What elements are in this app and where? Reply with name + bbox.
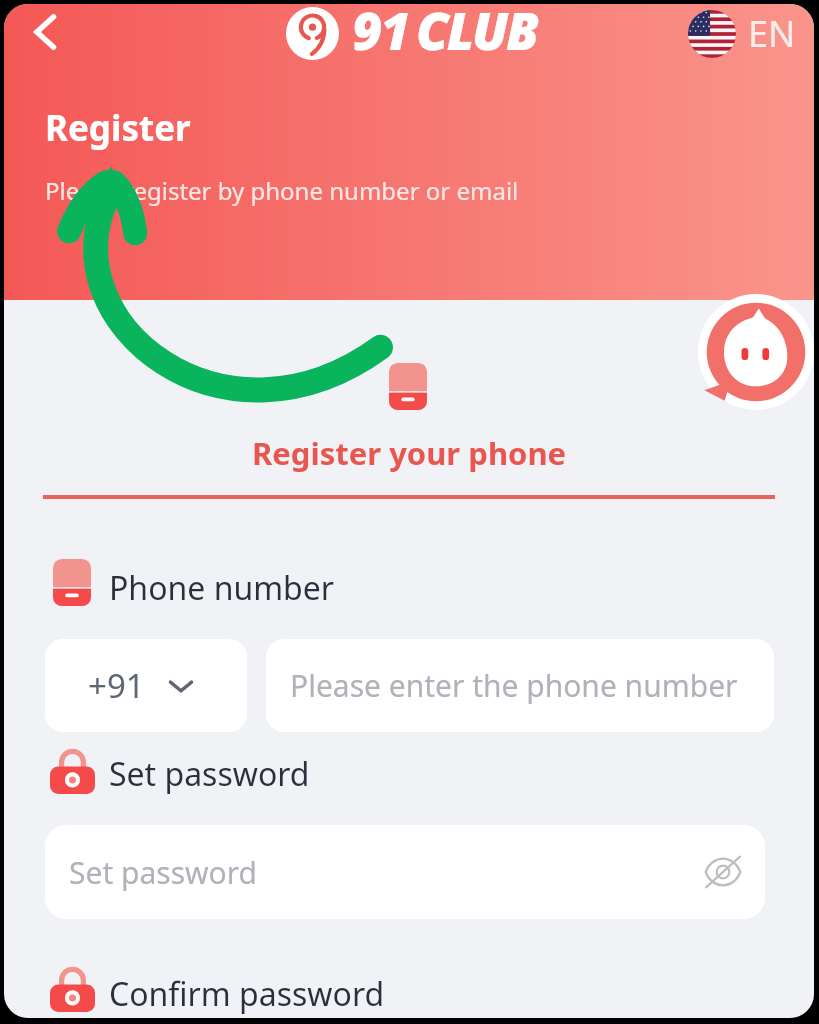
button[interactable]: EN <box>688 9 796 58</box>
staticText: +91 <box>88 663 145 708</box>
staticText: Please register by phone number or email <box>45 174 519 207</box>
staticText: Set password <box>69 852 258 893</box>
button[interactable]: Customer service <box>698 294 814 410</box>
staticText: Please enter the phone number <box>290 665 738 706</box>
staticText: Phone number <box>109 566 335 610</box>
staticText: Set password <box>109 752 310 796</box>
button[interactable]: Please enter the phone number <box>266 639 774 732</box>
button[interactable]: Back <box>25 11 67 53</box>
staticText: Confirm password <box>109 972 385 1016</box>
staticText: EN <box>748 9 796 58</box>
staticText: CLUB <box>416 4 538 65</box>
staticText: Register your phone <box>252 432 567 474</box>
staticText: 91 <box>352 4 409 65</box>
button[interactable]: +91 <box>45 639 247 732</box>
staticText: Register <box>45 104 191 152</box>
button[interactable]: Set password <box>45 825 765 919</box>
button[interactable]: Show password <box>701 850 745 894</box>
